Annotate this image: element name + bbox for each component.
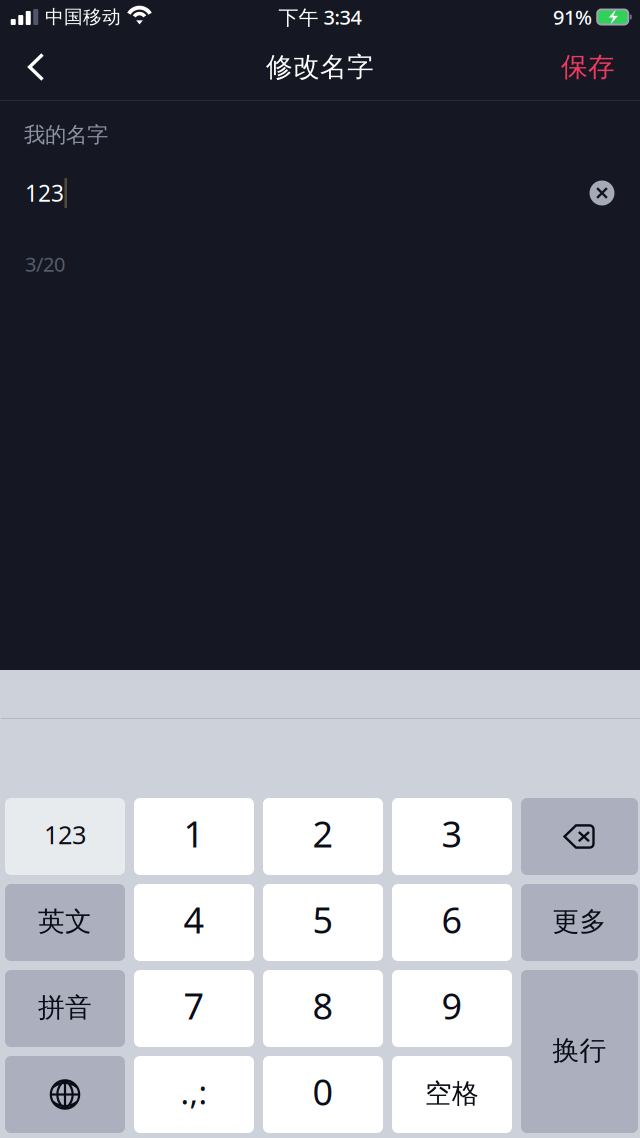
staticText: 5 [312,896,333,943]
button[interactable]: 更多 [521,884,638,961]
staticText: 3/20 [25,251,65,277]
staticText: 123 [44,818,86,851]
staticText: 空格 [425,1077,479,1110]
button[interactable]: 7 [134,970,254,1047]
staticText: 我的名字 [24,122,108,148]
button[interactable]: 3 [392,798,512,875]
button[interactable]: 2 [263,798,383,875]
staticText: 英文 [38,905,92,938]
button[interactable]: .,: [134,1056,254,1133]
staticText: 修改名字 [266,51,374,83]
button[interactable]: 4 [134,884,254,961]
staticText: 1 [183,810,204,857]
staticText: 8 [312,982,333,1029]
button[interactable]: 切换键盘 [5,1056,125,1133]
staticText: 中国移动 [45,5,121,28]
staticText: 更多 [552,905,606,938]
button[interactable]: 英文 [5,884,125,961]
staticText: 91% [553,4,592,30]
staticText: 2 [312,810,333,857]
button[interactable]: 6 [392,884,512,961]
button[interactable]: 换行 [521,970,638,1133]
staticText: 123 [25,178,64,208]
button[interactable]: 9 [392,970,512,1047]
button[interactable]: 清除 [577,168,627,218]
staticText: 3 [441,810,462,857]
staticText: 9 [441,982,462,1029]
button[interactable]: 拼音 [5,970,125,1047]
staticText: 4 [183,896,204,943]
staticText: 换行 [552,1034,606,1067]
button[interactable]: 5 [263,884,383,961]
button[interactable]: 保存 [549,34,640,100]
button[interactable]: 空格 [392,1056,512,1133]
button[interactable]: 0 [263,1056,383,1133]
staticText: 保存 [561,51,615,83]
button[interactable]: 1 [134,798,254,875]
staticText: 6 [441,896,462,943]
button[interactable]: 123 [5,798,125,875]
button[interactable]: 8 [263,970,383,1047]
staticText: .,: [180,1071,207,1113]
button[interactable]: 返回 [0,34,72,100]
staticText: 7 [183,982,204,1029]
button[interactable]: 删除 [521,798,638,875]
staticText: 拼音 [38,991,92,1024]
staticText: 0 [312,1068,333,1115]
staticText: 下午 3:34 [278,4,361,30]
